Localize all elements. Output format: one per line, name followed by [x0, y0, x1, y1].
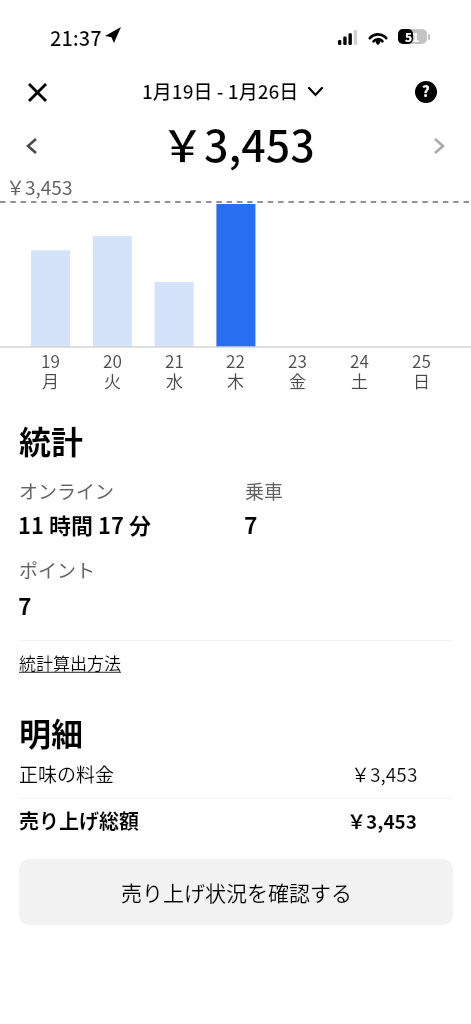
button[interactable]: 前の週: [14, 128, 50, 164]
staticText: 51: [405, 28, 420, 43]
staticText: 22: [226, 348, 245, 373]
staticText: 売り上げ総額: [19, 806, 139, 835]
staticText: 19: [41, 348, 60, 373]
staticText: 明細: [19, 709, 84, 755]
staticText: 日: [413, 368, 430, 393]
staticText: 月: [42, 368, 59, 393]
staticText: 正味の料金: [19, 760, 115, 788]
staticText: ?: [422, 81, 430, 102]
button[interactable]: 1月19日 - 1月26日: [142, 77, 322, 105]
staticText: 金: [289, 368, 306, 393]
staticText: 火: [104, 368, 121, 393]
button[interactable]: 次の週: [421, 128, 457, 164]
staticText: ￥3,453: [6, 173, 73, 201]
staticText: 11 時間 17 分: [18, 508, 151, 540]
button[interactable]: 統計算出方法: [19, 650, 121, 675]
staticText: ￥3,453: [161, 112, 315, 174]
staticText: 23: [288, 348, 307, 373]
staticText: 乗車: [245, 477, 284, 505]
staticText: 20: [103, 348, 122, 373]
staticText: 7: [244, 507, 258, 540]
staticText: ￥3,453: [347, 807, 418, 835]
staticText: 7: [18, 588, 32, 621]
button[interactable]: 売り上げ状況を確認する: [19, 859, 453, 925]
staticText: 25: [412, 348, 431, 373]
staticText: 21: [165, 348, 184, 373]
staticText: 21:37: [50, 23, 102, 52]
staticText: オンライン: [19, 477, 115, 505]
staticText: 売り上げ状況を確認する: [121, 877, 352, 907]
staticText: 水: [166, 368, 183, 393]
staticText: ￥3,453: [351, 760, 418, 788]
staticText: 24: [350, 348, 369, 373]
staticText: 統計: [19, 417, 84, 463]
staticText: 統計算出方法: [19, 650, 121, 675]
staticText: 1月19日 - 1月26日: [142, 77, 299, 105]
button[interactable]: ヘルプ: [406, 72, 446, 112]
button[interactable]: 閉じる: [17, 73, 57, 113]
staticText: 土: [351, 368, 368, 393]
staticText: ポイント: [19, 556, 96, 584]
staticText: 木: [227, 368, 244, 393]
